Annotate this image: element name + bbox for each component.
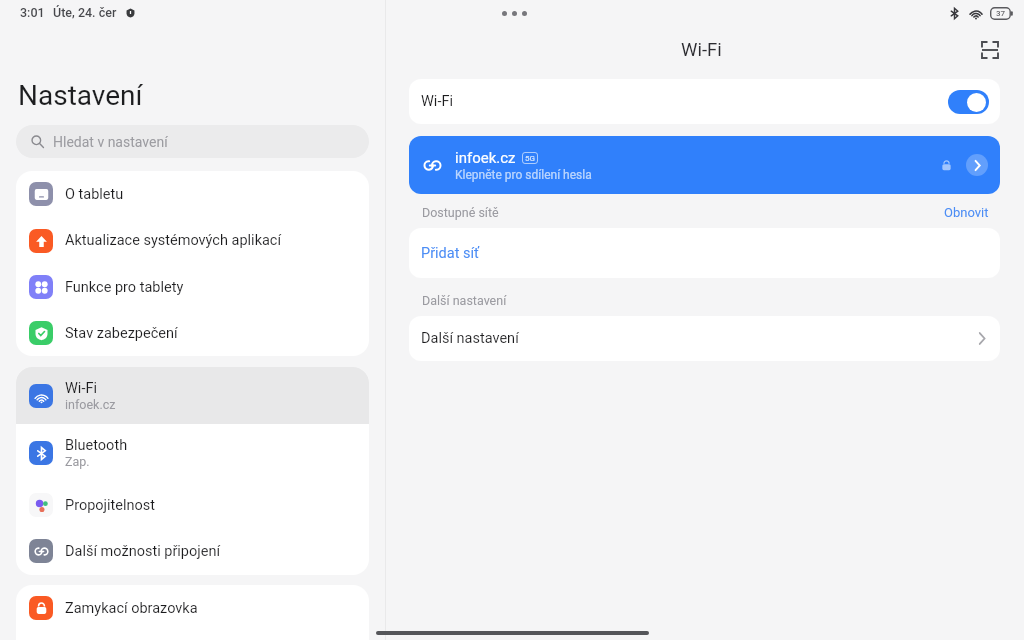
staticText: Aktualizace systémových aplikací bbox=[65, 232, 282, 249]
button[interactable]: O tabletu bbox=[16, 171, 369, 217]
button[interactable]: Přidat síť bbox=[409, 228, 1000, 278]
staticText: Přidat síť bbox=[421, 245, 480, 262]
staticText: Další možnosti připojení bbox=[65, 543, 221, 560]
button[interactable]: Další nastavení bbox=[409, 316, 1000, 361]
button[interactable]: Zamykací obrazovka bbox=[16, 585, 369, 631]
staticText: Funkce pro tablety bbox=[65, 279, 184, 296]
button[interactable]: Scan QR code bbox=[977, 37, 1003, 63]
staticText: Wi-Fi bbox=[681, 39, 722, 61]
staticText: Úte, 24. čer bbox=[53, 5, 117, 20]
staticText: Další nastavení bbox=[422, 293, 507, 308]
staticText: Stav zabezpečení bbox=[65, 325, 178, 342]
button[interactable]: Network details bbox=[966, 154, 988, 176]
staticText: Nastavení bbox=[18, 79, 143, 112]
staticText: Obnovit bbox=[944, 205, 989, 220]
button[interactable]: Wi-Fi on bbox=[948, 90, 989, 114]
staticText: Klepněte pro sdílení hesla bbox=[455, 168, 592, 182]
staticText: Hledat v nastavení bbox=[53, 134, 168, 150]
button[interactable]: Wi-Fi bbox=[409, 79, 1000, 124]
button[interactable]: Aktualizace systémových aplikací bbox=[16, 217, 369, 264]
staticText: 3:01 bbox=[20, 5, 45, 20]
staticText: Další nastavení bbox=[421, 330, 519, 347]
staticText: Zap. bbox=[65, 454, 90, 469]
staticText: Zamykací obrazovka bbox=[65, 600, 198, 617]
button[interactable]: Stav zabezpečení bbox=[16, 310, 369, 356]
staticText: Wi-Fi bbox=[65, 380, 97, 397]
staticText: Bluetooth bbox=[65, 437, 128, 454]
staticText: infoek.cz bbox=[455, 149, 516, 167]
button[interactable]: Funkce pro tablety bbox=[16, 264, 369, 310]
staticText: 37 bbox=[996, 9, 1006, 18]
button[interactable]: Wi-Fi bbox=[16, 367, 369, 424]
staticText: Propojitelnost bbox=[65, 497, 156, 514]
staticText: O tabletu bbox=[65, 186, 124, 203]
button[interactable]: Obnovit bbox=[939, 201, 994, 224]
staticText: Dostupné sítě bbox=[422, 205, 499, 220]
button[interactable]: Propojitelnost bbox=[16, 482, 369, 528]
button[interactable]: infoek.cz bbox=[409, 136, 1000, 194]
button[interactable]: Další možnosti připojení bbox=[16, 528, 369, 574]
staticText: Wi-Fi bbox=[421, 93, 453, 110]
button[interactable]: Hledat v nastavení bbox=[16, 125, 369, 158]
staticText: infoek.cz bbox=[65, 397, 116, 412]
staticText: 5G bbox=[525, 154, 535, 163]
button[interactable]: Bluetooth bbox=[16, 424, 369, 482]
